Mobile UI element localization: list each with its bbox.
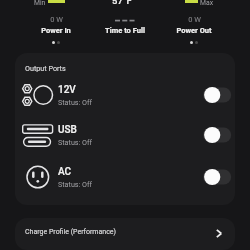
staticText: Time to Full [105, 26, 145, 35]
staticText: Status: Off [58, 180, 93, 188]
staticText: Charge Profile (Performance) [25, 228, 116, 236]
button[interactable]: AC [15, 157, 235, 197]
staticText: Status: Off [58, 98, 93, 106]
button[interactable]: Toggle output port [203, 125, 235, 145]
staticText: 12V [58, 84, 76, 96]
staticText: AC [58, 166, 72, 178]
staticText: Max [200, 0, 214, 7]
staticText: 0 W [50, 15, 63, 24]
staticText: 0 W [188, 15, 201, 24]
button[interactable]: USB [15, 115, 235, 155]
button[interactable]: 12V [15, 75, 235, 115]
staticText: Output Ports [25, 64, 66, 72]
staticText: USB [58, 124, 77, 136]
button[interactable]: Toggle output port [203, 167, 235, 187]
staticText: Status: Off [58, 138, 93, 146]
staticText: Power In [41, 26, 71, 35]
staticText: Min [34, 0, 46, 7]
button[interactable]: Toggle output port [203, 85, 235, 105]
button[interactable]: Charge Profile (Performance) [15, 218, 235, 250]
staticText: Power Out [176, 26, 212, 35]
staticText: 57°F [112, 0, 132, 6]
